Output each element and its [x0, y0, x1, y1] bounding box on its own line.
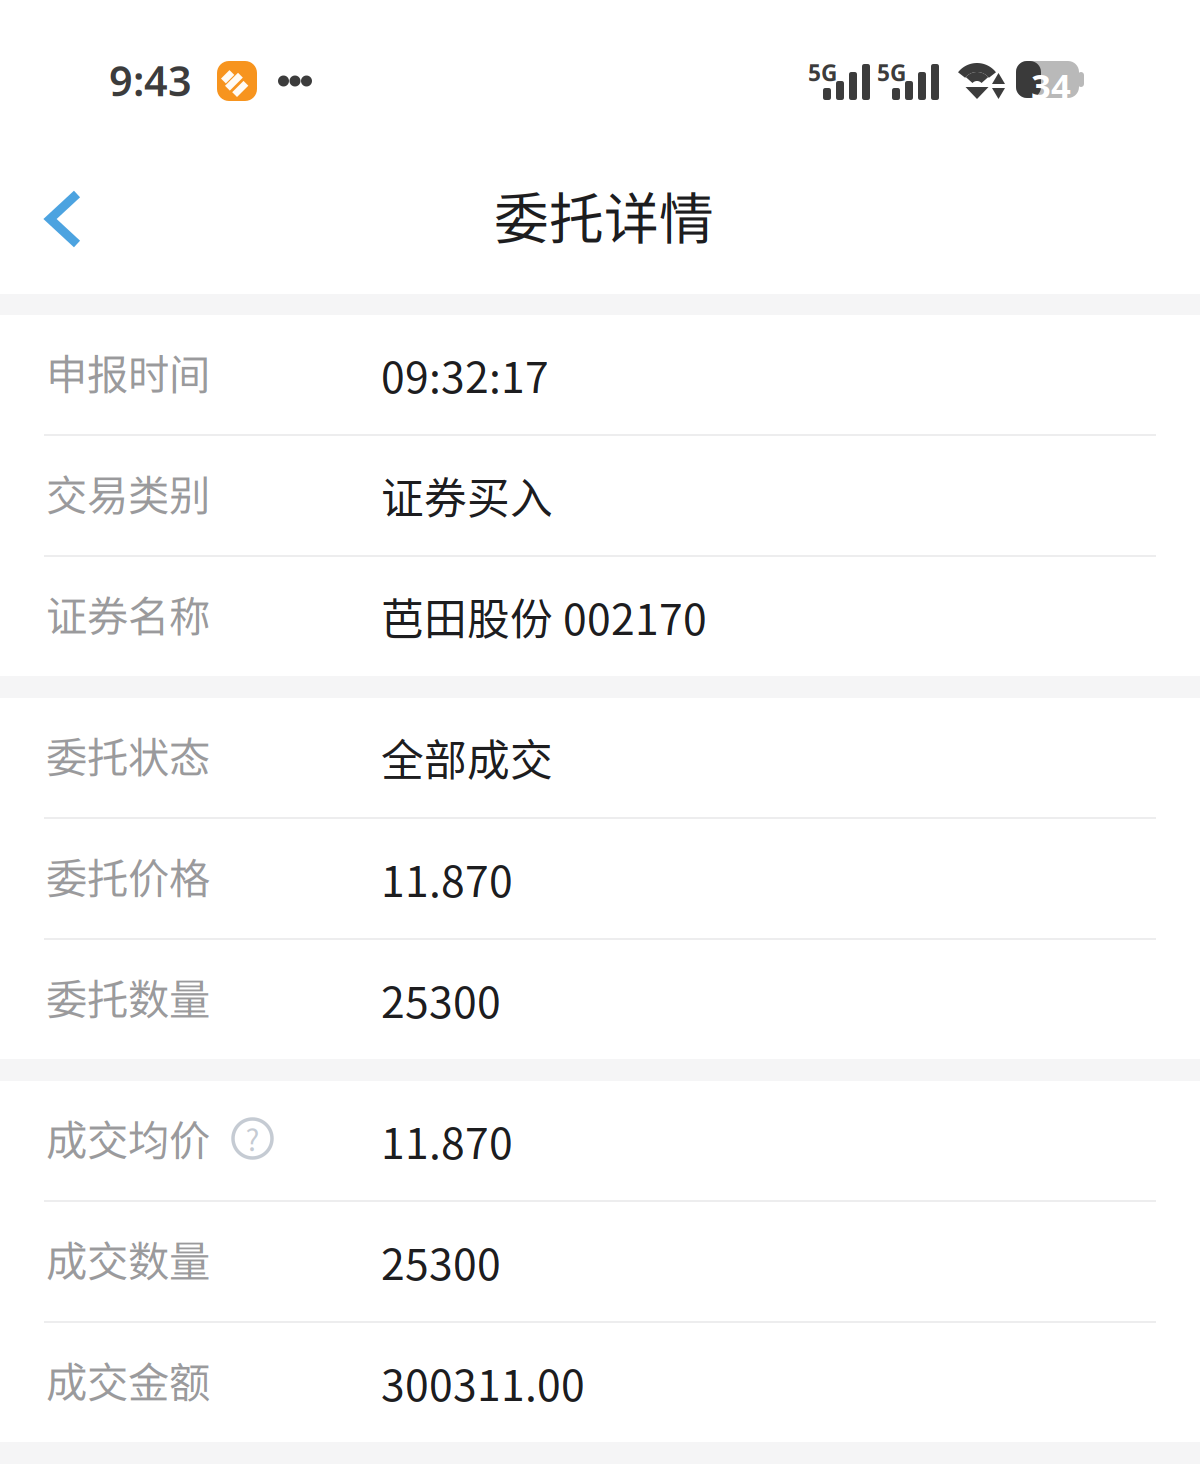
staticText: 34 [1031, 62, 1071, 109]
staticText: 证券买入 [381, 465, 553, 526]
staticText: 芭田股份 002170 [381, 586, 707, 647]
staticText: 证券名称 [46, 584, 210, 643]
staticText: 09:32:17 [381, 344, 549, 405]
staticText: 委托数量 [46, 967, 210, 1026]
staticText: 11.870 [381, 848, 513, 909]
staticText: 委托状态 [46, 725, 210, 784]
staticText: 5G [877, 57, 906, 88]
staticText: 5G [808, 57, 837, 88]
staticText: 成交均价 [46, 1108, 210, 1167]
staticText: 交易类别 [46, 463, 210, 522]
staticText: 9:43 [109, 52, 192, 108]
staticText: 成交数量 [46, 1229, 210, 1288]
button[interactable]: 返回 [0, 148, 117, 294]
staticText: 25300 [381, 1231, 501, 1292]
staticText: 25300 [381, 969, 501, 1030]
staticText: 委托详情 [494, 175, 714, 254]
staticText: 11.870 [381, 1110, 513, 1171]
staticText: 300311.00 [381, 1352, 585, 1413]
staticText: 委托价格 [46, 846, 210, 905]
staticText: ? [245, 1117, 259, 1160]
staticText: 申报时间 [46, 342, 210, 401]
staticText: 全部成交 [381, 727, 553, 788]
staticText: 成交金额 [46, 1350, 210, 1409]
